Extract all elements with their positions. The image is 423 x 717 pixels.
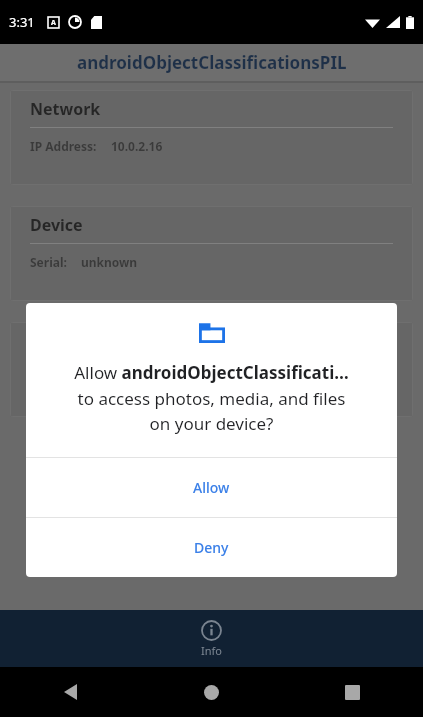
staticText: Network xyxy=(30,98,101,120)
staticText: 3:31 xyxy=(9,13,35,31)
staticText: Info xyxy=(201,643,222,658)
staticText: 10.0.2.16 xyxy=(111,138,163,154)
staticText: IP Address: xyxy=(30,138,97,154)
staticText: Device xyxy=(30,214,83,236)
staticText: A xyxy=(51,18,56,28)
button[interactable]: Allow xyxy=(26,458,397,517)
button[interactable]: Network xyxy=(10,90,413,185)
staticText: unknown xyxy=(81,254,138,270)
button[interactable]: Info xyxy=(0,610,423,667)
staticText: Deny xyxy=(194,538,229,557)
button[interactable]: Back xyxy=(0,667,141,717)
button[interactable]: Device xyxy=(10,206,413,301)
button[interactable] xyxy=(10,322,413,417)
button[interactable]: Deny xyxy=(26,518,397,577)
button[interactable]: Home xyxy=(141,667,282,717)
button[interactable]: Recent apps xyxy=(282,667,423,717)
staticText: Allow xyxy=(193,478,230,497)
staticText: androidObjectClassificationsPIL xyxy=(77,51,347,74)
staticText: Serial: xyxy=(30,254,67,270)
staticText: Allow androidObjectClassificati… to acce… xyxy=(48,361,375,435)
